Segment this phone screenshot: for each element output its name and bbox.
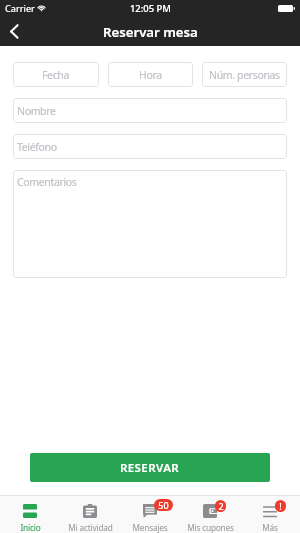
button[interactable]: Fecha xyxy=(13,62,99,87)
staticText: RESERVAR xyxy=(120,460,180,476)
staticText: ! xyxy=(279,500,282,512)
staticText: 12:05 PM xyxy=(130,2,171,15)
button[interactable]: 2 xyxy=(180,496,240,533)
button[interactable]: Teléfono xyxy=(13,134,287,159)
button[interactable]: ! xyxy=(240,496,300,533)
staticText: Nombre xyxy=(17,104,56,118)
staticText: Reservar mesa xyxy=(103,23,198,41)
staticText: Inicio xyxy=(20,522,41,533)
button[interactable]: Atrás xyxy=(0,17,28,45)
staticText: Fecha xyxy=(42,68,70,82)
staticText: Mi actividad xyxy=(68,522,113,533)
button[interactable]: Nombre xyxy=(13,98,287,123)
staticText: Hora xyxy=(139,68,162,82)
staticText: Teléfono xyxy=(17,140,57,154)
button[interactable]: Hora xyxy=(108,62,193,87)
staticText: Mis cupones xyxy=(187,522,234,533)
staticText: 2 xyxy=(218,500,224,512)
staticText: 50 xyxy=(158,499,169,511)
staticText: Mensajes xyxy=(132,522,168,533)
button[interactable]: 50 xyxy=(120,496,180,533)
button[interactable]: Comentarios xyxy=(13,170,287,278)
staticText: Núm. personas xyxy=(209,68,280,82)
staticText: Más xyxy=(262,522,278,533)
button[interactable]: Mi actividad xyxy=(60,496,120,533)
staticText: Comentarios xyxy=(17,175,77,189)
button[interactable]: RESERVAR xyxy=(30,453,270,482)
button[interactable]: Inicio xyxy=(0,496,60,533)
button[interactable]: Núm. personas xyxy=(202,62,287,87)
staticText: Carrier xyxy=(5,2,35,15)
